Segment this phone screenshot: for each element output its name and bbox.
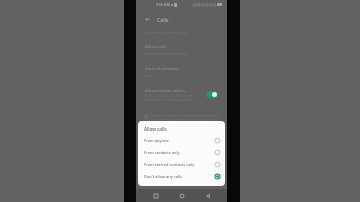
- staticText: 9:56 AM: [156, 2, 170, 7]
- staticText: Calls: [157, 16, 169, 23]
- staticText: Allow calls: [145, 43, 167, 49]
- staticText: Starred contacts: [145, 65, 179, 71]
- staticText: Choose who can reach you: [145, 30, 188, 35]
- staticText: Notifications and calls from these conta…: [151, 114, 219, 122]
- button[interactable]: Starred contacts: [136, 65, 227, 78]
- staticText: From starred contacts only: [145, 51, 188, 56]
- staticText: Allow calls: [144, 126, 167, 132]
- staticText: If the same person calls a second time w…: [145, 94, 202, 102]
- staticText: From starred contacts only: [144, 162, 212, 167]
- staticText: From contacts only: [144, 150, 212, 155]
- button[interactable]: From starred contacts only: [138, 158, 225, 170]
- button[interactable]: Back: [143, 15, 152, 24]
- button[interactable]: Allow repeat callers: [136, 87, 227, 102]
- staticText: From anyone: [144, 138, 212, 143]
- staticText: Don't allow any calls: [144, 174, 212, 179]
- staticText: None: [145, 73, 154, 78]
- button[interactable]: Home: [175, 189, 188, 202]
- button[interactable]: Allow calls: [136, 43, 227, 56]
- button[interactable]: Allow repeat callers toggle: [206, 91, 218, 98]
- staticText: Allow repeat callers: [145, 87, 186, 93]
- button[interactable]: Don't allow any calls: [138, 170, 225, 182]
- button[interactable]: Back: [201, 189, 214, 202]
- button[interactable]: From anyone: [138, 134, 225, 146]
- button[interactable]: Recent apps: [149, 189, 162, 202]
- button[interactable]: From contacts only: [138, 146, 225, 158]
